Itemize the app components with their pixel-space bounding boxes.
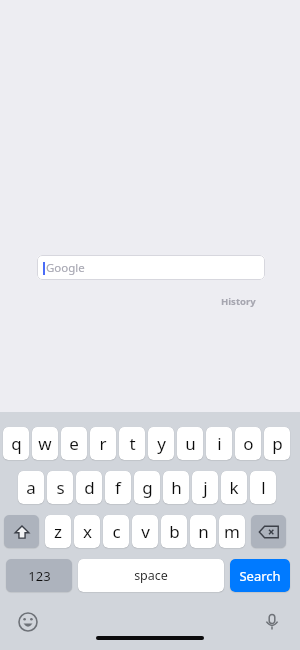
button[interactable]: Google — [37, 255, 265, 280]
button[interactable]: z — [45, 515, 71, 548]
button[interactable]: 123 — [6, 559, 72, 592]
button[interactable]: x — [74, 515, 100, 548]
button[interactable]: Voice input — [258, 608, 286, 636]
staticText: m — [224, 520, 240, 543]
staticText: d — [84, 476, 95, 499]
button[interactable]: s — [47, 471, 73, 504]
button[interactable]: Emoji keyboard — [14, 608, 42, 636]
button[interactable]: a — [18, 471, 44, 504]
staticText: b — [169, 520, 180, 543]
staticText: h — [171, 476, 182, 499]
button[interactable]: y — [148, 427, 174, 460]
staticText: k — [229, 476, 239, 499]
staticText: z — [54, 520, 62, 543]
button[interactable]: g — [134, 471, 160, 504]
staticText: n — [198, 520, 209, 543]
button[interactable]: space — [78, 559, 224, 592]
staticText: u — [185, 432, 196, 455]
button[interactable]: h — [163, 471, 189, 504]
staticText: e — [69, 432, 79, 455]
button[interactable]: u — [177, 427, 203, 460]
staticText: c — [112, 520, 121, 543]
staticText: f — [115, 476, 121, 499]
staticText: o — [243, 432, 254, 455]
staticText: Search — [239, 567, 281, 585]
button[interactable]: j — [192, 471, 218, 504]
staticText: l — [261, 476, 266, 499]
staticText: History — [221, 295, 256, 308]
button[interactable]: w — [32, 427, 58, 460]
button[interactable]: History — [218, 293, 259, 310]
staticText: v — [141, 520, 150, 543]
button[interactable]: v — [132, 515, 158, 548]
staticText: g — [142, 476, 153, 499]
staticText: Google — [46, 260, 85, 276]
button[interactable]: l — [250, 471, 276, 504]
staticText: t — [129, 432, 136, 455]
button[interactable]: r — [90, 427, 116, 460]
staticText: y — [157, 432, 166, 455]
staticText: i — [217, 432, 222, 455]
button[interactable]: e — [61, 427, 87, 460]
staticText: p — [272, 432, 283, 455]
staticText: w — [38, 432, 52, 455]
staticText: q — [11, 432, 22, 455]
button[interactable]: Backspace — [251, 515, 286, 548]
button[interactable]: c — [103, 515, 129, 548]
button[interactable]: d — [76, 471, 102, 504]
staticText: s — [56, 476, 65, 499]
staticText: x — [83, 520, 92, 543]
staticText: j — [203, 476, 208, 499]
staticText: 123 — [28, 567, 51, 585]
staticText: a — [26, 476, 36, 499]
other: Backspace — [258, 521, 280, 543]
button[interactable]: o — [235, 427, 261, 460]
button[interactable]: f — [105, 471, 131, 504]
button[interactable]: n — [190, 515, 216, 548]
button[interactable]: t — [119, 427, 145, 460]
button[interactable]: Shift — [4, 515, 39, 548]
other: Shift — [13, 523, 31, 541]
button[interactable]: m — [219, 515, 245, 548]
button[interactable]: Search — [230, 559, 290, 592]
button[interactable]: p — [264, 427, 290, 460]
button[interactable]: i — [206, 427, 232, 460]
button[interactable]: q — [3, 427, 29, 460]
button[interactable]: b — [161, 515, 187, 548]
staticText: space — [134, 567, 168, 584]
staticText: r — [99, 432, 107, 455]
button[interactable]: k — [221, 471, 247, 504]
